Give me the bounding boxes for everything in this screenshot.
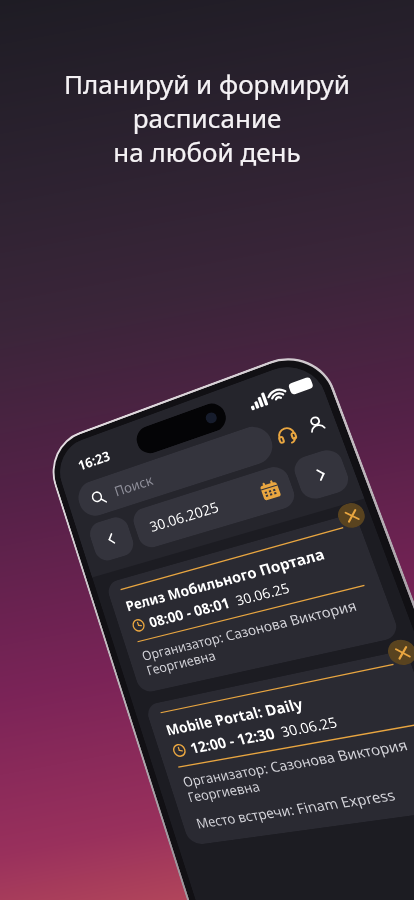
staticText: 12:00 - 12:30 — [187, 723, 278, 758]
staticText: 30.06.2025 — [147, 497, 222, 536]
staticText: 16:23 — [76, 446, 112, 473]
staticText: Планируй и формируй расписание на любой … — [18, 66, 396, 169]
button[interactable]: Релиз Мобильного Портала — [105, 513, 401, 694]
staticText: 30.06.25 — [278, 712, 340, 740]
button[interactable]: Profile — [296, 406, 336, 444]
staticText: Поиск — [112, 470, 156, 501]
button[interactable]: Dismiss — [334, 500, 368, 531]
button[interactable]: 30.06.2025 — [130, 463, 298, 550]
staticText: Организатор: Сазонова Виктория Георгиевн… — [139, 595, 366, 680]
staticText: 08:00 - 08:01 — [146, 592, 233, 632]
button[interactable]: Mobile Portal: Daily — [144, 650, 414, 846]
button[interactable]: Поиск — [74, 422, 278, 520]
staticText: Mobile Portal: Daily — [163, 693, 306, 740]
staticText: 30.06.25 — [233, 578, 292, 609]
button[interactable]: Support — [266, 416, 306, 453]
staticText: Релиз Мобильного Портала — [123, 543, 327, 615]
button[interactable]: Previous day — [87, 514, 137, 563]
button[interactable]: Next day — [290, 446, 353, 502]
staticText: Место встречи: Finam Express — [194, 784, 398, 832]
button[interactable]: Dismiss — [384, 637, 414, 667]
staticText: Организатор: Сазонова Виктория Георгиевн… — [180, 734, 414, 807]
